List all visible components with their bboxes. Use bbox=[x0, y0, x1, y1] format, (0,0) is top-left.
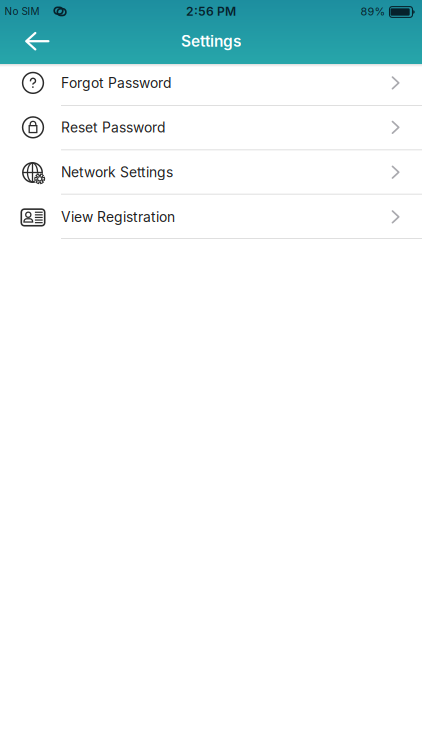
button[interactable]: Back bbox=[0, 32, 50, 50]
button[interactable]: View Registration bbox=[0, 195, 422, 239]
staticText: Network Settings bbox=[61, 164, 173, 181]
staticText: Reset Password bbox=[61, 119, 165, 136]
staticText: Forgot Password bbox=[61, 74, 171, 91]
button[interactable]: Forgot Password bbox=[0, 64, 422, 106]
staticText: Settings bbox=[181, 32, 241, 50]
staticText: No SIM bbox=[4, 5, 39, 17]
staticText: 2:56 PM bbox=[186, 4, 236, 19]
staticText: 89% bbox=[360, 5, 385, 18]
button[interactable]: Reset Password bbox=[0, 106, 422, 150]
staticText: View Registration bbox=[61, 208, 175, 225]
button[interactable]: Network Settings bbox=[0, 150, 422, 195]
